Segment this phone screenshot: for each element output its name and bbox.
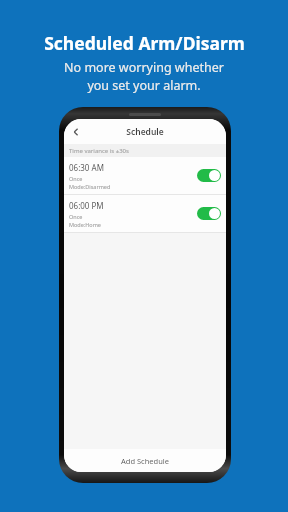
staticText: Schedule (126, 126, 164, 138)
staticText: Once (69, 175, 83, 182)
button[interactable]: Add Schedule (64, 449, 226, 472)
staticText: Scheduled Arm/Disarm (44, 31, 245, 55)
staticText: 06:00 PM (69, 200, 104, 211)
staticText: Mode:Home (69, 221, 101, 228)
staticText: Once (69, 213, 83, 220)
staticText: Add Schedule (121, 456, 169, 466)
button[interactable]: Toggle 06:30 AM schedule (197, 169, 221, 182)
button[interactable]: Back (67, 123, 85, 141)
staticText: No more worrying whether (64, 59, 224, 76)
button[interactable]: 06:00 PM (64, 195, 226, 232)
staticText: Time variance is ±30s (69, 147, 129, 155)
staticText: you set your alarm. (87, 77, 201, 94)
staticText: 06:30 AM (69, 162, 104, 173)
button[interactable]: 06:30 AM (64, 157, 226, 194)
staticText: Mode:Disarmed (69, 183, 111, 190)
button[interactable]: Toggle 06:00 PM schedule (197, 207, 221, 220)
